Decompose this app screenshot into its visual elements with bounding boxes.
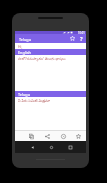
staticText: 10:01 bbox=[78, 31, 85, 34]
staticText: హలో/నమస్కారం/ తెలుగు భాషలు bbox=[18, 56, 66, 62]
staticText: Telugu bbox=[19, 37, 31, 42]
staticText: నీ పేరు ఏమిటి మిత్రమా bbox=[18, 98, 50, 104]
staticText: Telugu bbox=[18, 92, 30, 97]
button[interactable]: Recents bbox=[61, 142, 80, 153]
button[interactable]: Bookmark bbox=[71, 131, 86, 141]
button[interactable]: Send on WhatsApp bbox=[55, 131, 71, 141]
staticText: English bbox=[18, 50, 31, 55]
button[interactable]: Copy bbox=[23, 131, 39, 141]
staticText: ? bbox=[80, 35, 83, 42]
button[interactable]: English bbox=[15, 49, 86, 55]
button[interactable]: Back bbox=[23, 142, 42, 153]
button[interactable]: Help bbox=[77, 34, 86, 43]
button[interactable]: Home bbox=[42, 142, 61, 153]
button[interactable]: Favorites bbox=[68, 34, 77, 43]
button[interactable]: Share bbox=[39, 131, 55, 141]
staticText: Hi, bbox=[18, 44, 23, 49]
button[interactable]: Telugu bbox=[15, 91, 86, 97]
